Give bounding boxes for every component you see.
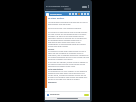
staticText: In Other Matters: [48, 17, 65, 20]
button[interactable]: Menu: [46, 13, 49, 16]
staticText: This article includes a list of general …: [48, 27, 89, 29]
button[interactable]: Open in app: [84, 94, 89, 96]
staticText: Notes and citations: [48, 68, 64, 70]
staticText: The number of these details appear withi…: [48, 50, 89, 60]
staticText: The contents of these articles must be s…: [48, 31, 89, 47]
staticText: The following list is a short summary of…: [48, 70, 89, 80]
staticText: References: [48, 81, 57, 83]
staticText: See also: [48, 48, 55, 50]
button[interactable]: Wikipedia: [45, 92, 90, 97]
button[interactable]: Tabs: [82, 6, 87, 8]
staticText: Wikipedia: [50, 93, 60, 96]
staticText: encyclopedia: [46, 8, 57, 10]
staticText: WIKIPEDIA: [50, 13, 62, 16]
staticText: en.m.wikipedia.org/wiki: [46, 5, 69, 8]
staticText: An interactive encyclopaedia that everyo…: [48, 21, 89, 25]
staticText: If you have any questions, please contac…: [48, 61, 89, 67]
